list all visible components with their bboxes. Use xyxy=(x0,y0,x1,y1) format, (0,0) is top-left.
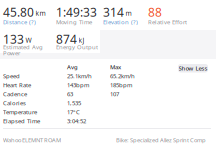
staticText: Energy Output xyxy=(56,43,98,51)
staticText: Show Less xyxy=(178,64,207,72)
staticText: Moving Time xyxy=(56,18,92,26)
staticText: 314 xyxy=(103,4,124,20)
staticText: W xyxy=(25,35,31,45)
staticText: Avg xyxy=(67,63,78,71)
staticText: Wahoo ELEMNT ROAM xyxy=(3,136,61,144)
staticText: 185bpm xyxy=(110,81,132,89)
staticText: Cadence xyxy=(3,90,27,98)
staticText: 874 xyxy=(56,31,77,47)
staticText: Heart Rate xyxy=(3,81,31,89)
staticText: 1:49:33 xyxy=(56,4,97,20)
staticText: 17°C xyxy=(67,108,80,116)
staticText: 25.1km/h xyxy=(67,72,92,80)
staticText: Estimated Avg xyxy=(3,43,43,51)
staticText: Max xyxy=(110,63,121,71)
staticText: Calories xyxy=(3,99,26,107)
staticText: 143bpm xyxy=(67,81,89,89)
staticText: Relative Effort xyxy=(148,18,187,26)
staticText: Elapsed Time xyxy=(3,117,40,125)
button[interactable]: Show Less xyxy=(178,64,208,72)
staticText: Bike: Specialized Allez Sprint Comp xyxy=(116,136,206,144)
staticText: 1,535 xyxy=(67,99,81,107)
staticText: Elevation (?) xyxy=(103,18,138,26)
staticText: 133 xyxy=(3,31,24,47)
staticText: 65.2km/h xyxy=(110,72,135,80)
staticText: Speed xyxy=(3,72,20,80)
staticText: km xyxy=(35,8,45,18)
staticText: Distance (?) xyxy=(3,18,36,26)
staticText: 63 xyxy=(67,90,73,98)
staticText: 3:04:52 xyxy=(67,117,86,125)
staticText: kJ xyxy=(78,35,84,45)
staticText: 107 xyxy=(110,90,119,98)
staticText: m xyxy=(125,8,131,18)
staticText: 88 xyxy=(148,4,162,20)
staticText: Power xyxy=(3,49,20,57)
staticText: Temperature xyxy=(3,108,37,116)
staticText: 45.80 xyxy=(3,4,34,20)
